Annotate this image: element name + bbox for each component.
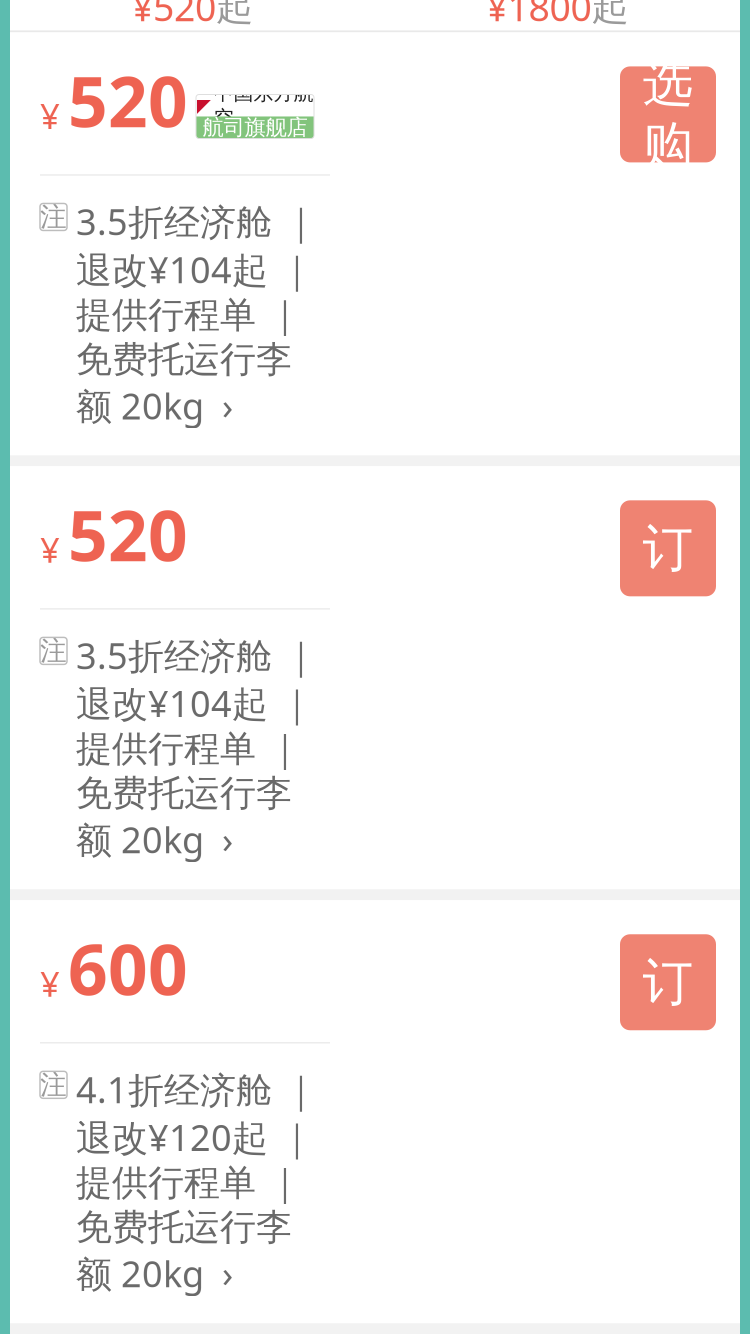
staticText: 起: [591, 0, 628, 30]
staticText: 3.5折经济舱 ｜ 退改¥104起 ｜ 提供行程单 ｜ 免费托运行李额 20kg…: [76, 631, 318, 863]
staticText: 4.1折经济舱 ｜ 退改¥120起 ｜ 提供行程单 ｜ 免费托运行李额 20kg…: [76, 1065, 318, 1297]
staticText: 3.5折经济舱 ｜ 退改¥104起 ｜ 提供行程单 ｜ 免费托运行李额 20kg…: [76, 197, 318, 429]
staticText: ¥1800: [486, 0, 591, 32]
staticText: 中国东方航空: [213, 81, 313, 130]
staticText: ¥: [40, 960, 60, 1006]
staticText: 订: [642, 951, 693, 1013]
staticText: 注: [40, 201, 67, 233]
button[interactable]: 订: [620, 500, 716, 596]
staticText: ◤: [196, 95, 210, 116]
button[interactable]: 选购: [620, 66, 716, 162]
staticText: 注: [40, 1068, 67, 1101]
button[interactable]: 注: [40, 175, 330, 429]
button[interactable]: 注: [40, 609, 330, 863]
button[interactable]: 注: [40, 1043, 330, 1297]
staticText: 航司旗舰店: [202, 114, 307, 141]
staticText: ¥: [40, 92, 60, 138]
staticText: ¥520: [132, 0, 216, 32]
button[interactable]: 经济舱: [10, 0, 375, 54]
staticText: 600: [68, 922, 188, 1014]
staticText: 订: [642, 517, 693, 579]
staticText: 520: [68, 488, 188, 580]
staticText: 注: [40, 634, 67, 667]
staticText: 选购: [642, 52, 693, 177]
staticText: 起: [216, 0, 253, 30]
button[interactable]: 订: [620, 934, 716, 1030]
staticText: 520: [68, 54, 188, 146]
button[interactable]: 公务舱: [375, 0, 740, 54]
staticText: ¥: [40, 526, 60, 572]
